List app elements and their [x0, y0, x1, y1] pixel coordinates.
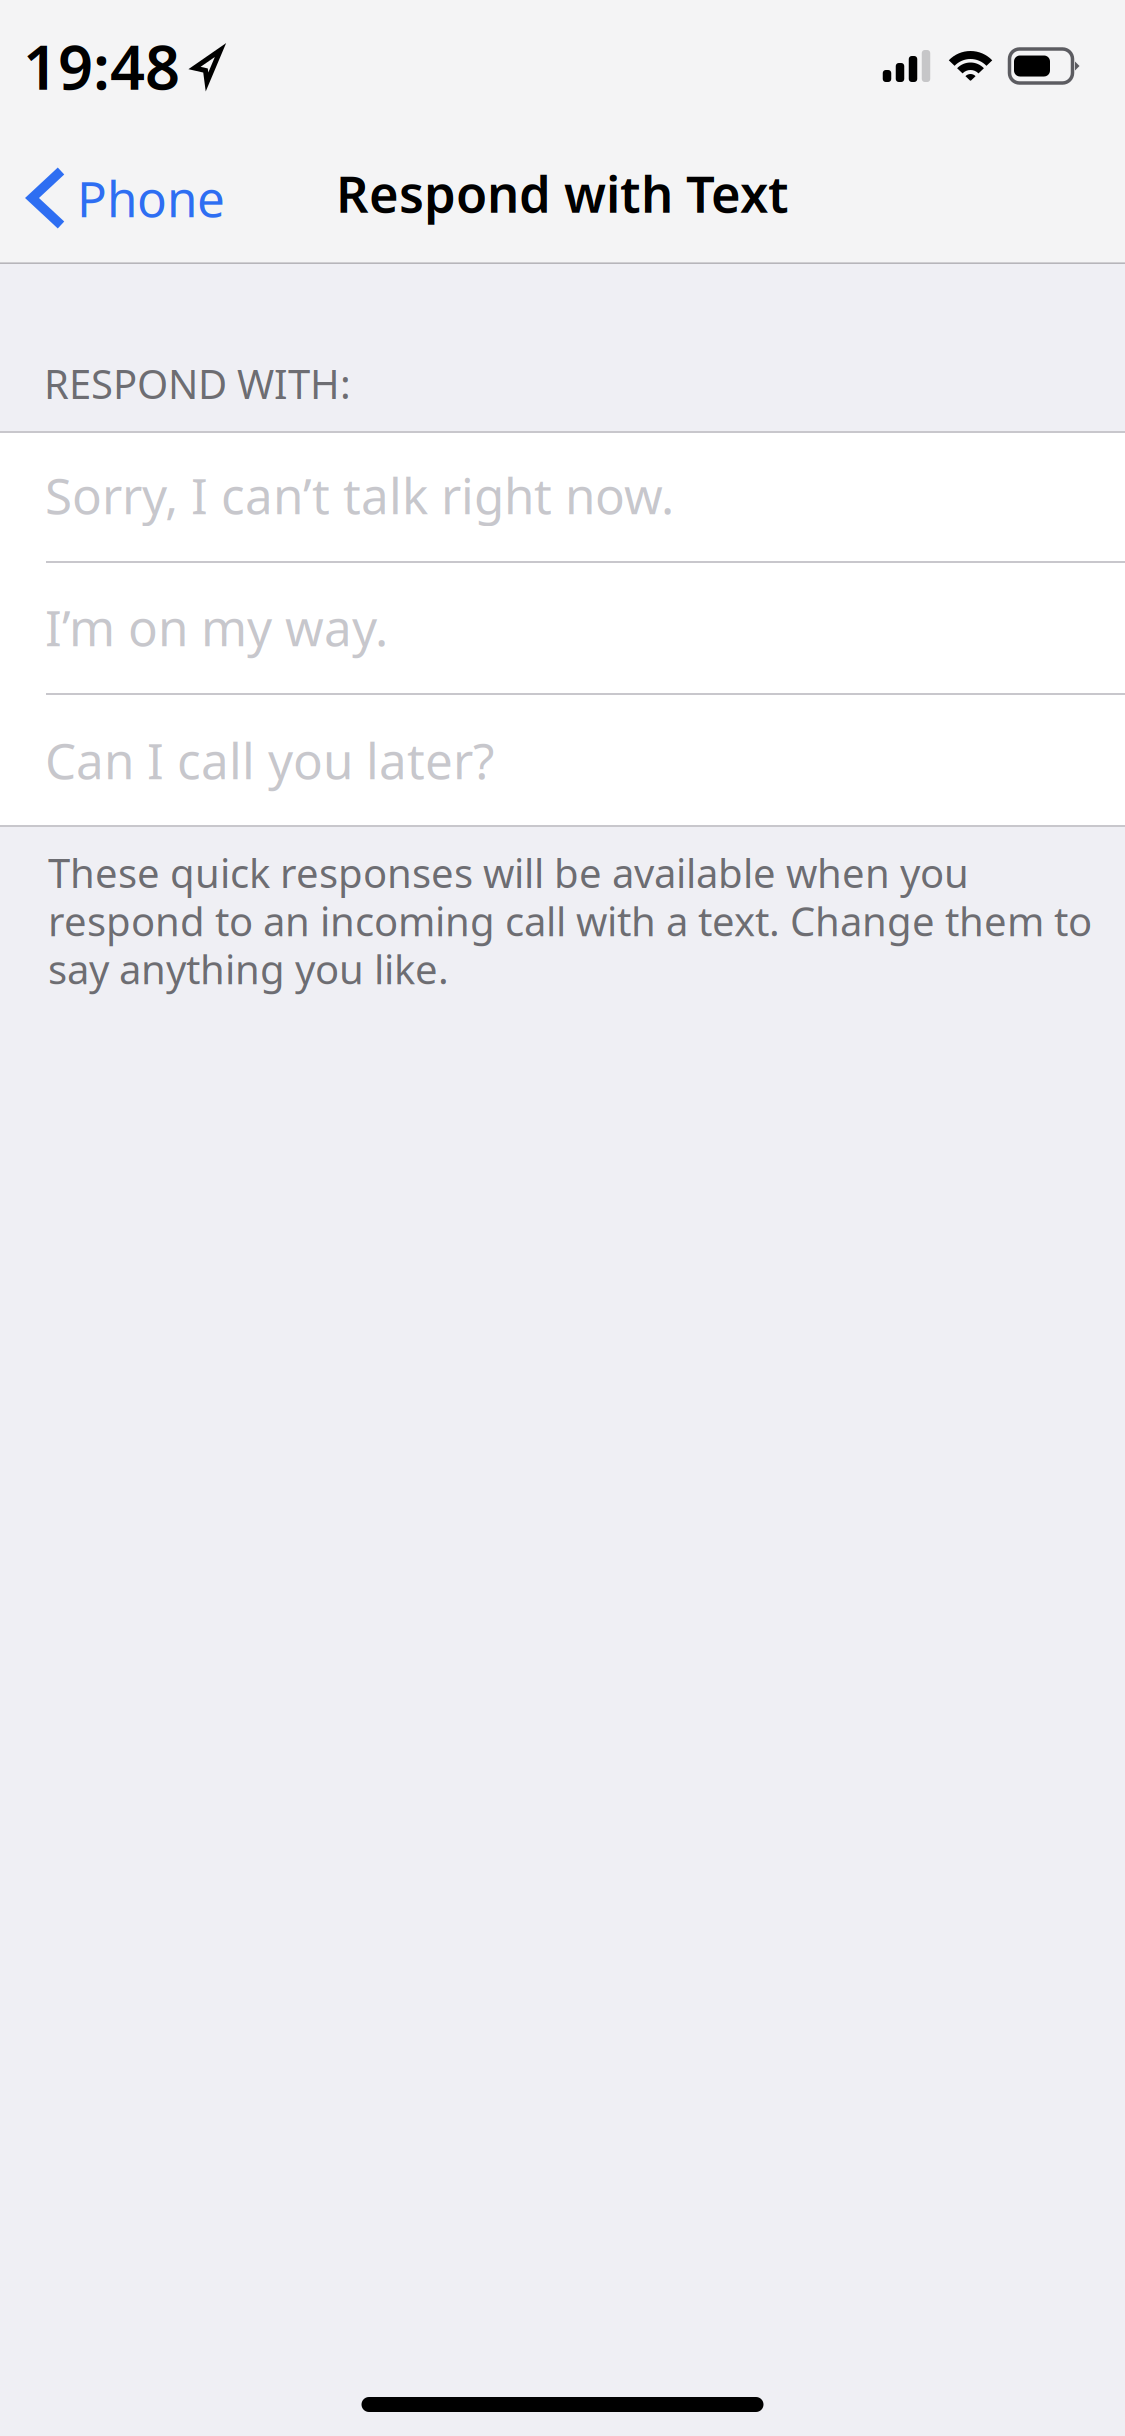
staticText: RESPOND WITH:	[44, 357, 351, 410]
staticText: I’m on my way.	[45, 594, 388, 660]
staticText: Sorry, I can’t talk right now.	[45, 462, 674, 528]
staticText: Can I call you later?	[45, 727, 494, 793]
button[interactable]: Can I call you later?	[0, 695, 1125, 827]
staticText: These quick responses will be available …	[48, 846, 1092, 995]
staticText: 19:48	[23, 25, 180, 107]
button[interactable]: I’m on my way.	[0, 563, 1125, 695]
button[interactable]: Phone	[0, 132, 245, 264]
staticText: Phone	[77, 165, 225, 231]
button[interactable]: Sorry, I can’t talk right now.	[0, 431, 1125, 563]
staticText: Respond with Text	[336, 159, 789, 227]
